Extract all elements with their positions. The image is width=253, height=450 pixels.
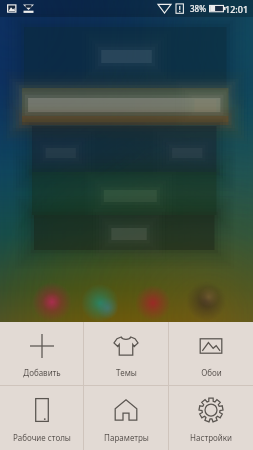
button[interactable]: Обои [169,322,253,385]
staticText: Обои [201,367,222,378]
staticText: Параметры [104,432,149,443]
staticText: Рабочие столы [13,432,71,443]
button[interactable]: Настройки [169,386,253,450]
button[interactable]: Темы [84,322,168,385]
staticText: Добавить [23,367,61,378]
staticText: Настройки [190,432,232,443]
staticText: 12:01 [225,3,249,15]
staticText: 38% [190,3,206,14]
button[interactable]: Добавить [0,322,83,385]
staticText: Темы [116,367,137,378]
button[interactable]: Параметры [84,386,168,450]
button[interactable]: Рабочие столы [0,386,83,450]
